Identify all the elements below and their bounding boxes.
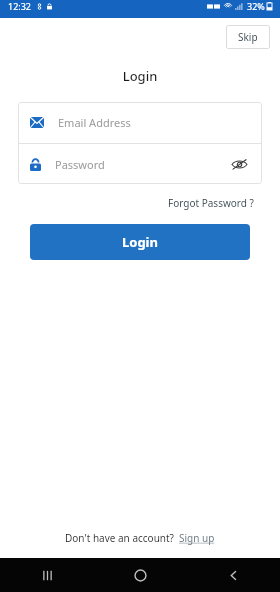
button[interactable]: Home — [94, 558, 187, 592]
button[interactable]: Login — [30, 224, 250, 260]
staticText: Sign up — [179, 531, 215, 545]
staticText: Don't have an account? — [65, 531, 174, 545]
button[interactable]: Show password — [228, 153, 250, 175]
button[interactable]: Email Address — [18, 102, 262, 143]
button[interactable]: Forgot Password ? — [164, 192, 258, 214]
staticText: Login — [0, 67, 280, 85]
button[interactable]: Back — [187, 558, 280, 592]
staticText: 12:32 — [8, 0, 32, 12]
staticText: Email Address — [58, 115, 131, 130]
staticText: Password — [55, 157, 105, 172]
button[interactable]: Skip — [226, 25, 270, 49]
staticText: 32% — [247, 0, 265, 12]
staticText: Forgot Password ? — [168, 196, 254, 210]
button[interactable]: Sign up — [179, 531, 215, 545]
button[interactable]: Password — [18, 144, 262, 184]
staticText: Skip — [238, 30, 258, 44]
staticText: Login — [122, 233, 158, 251]
button[interactable]: Recents — [0, 558, 94, 592]
